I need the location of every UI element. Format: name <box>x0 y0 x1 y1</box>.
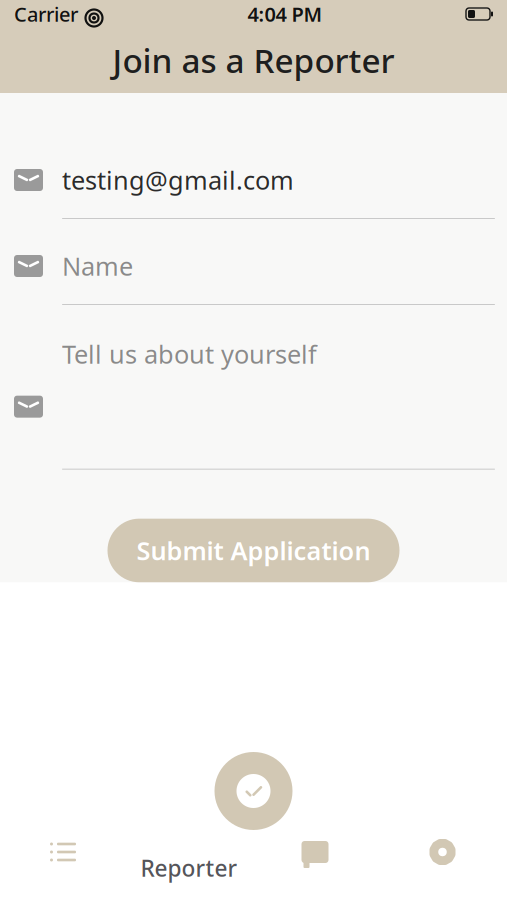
button[interactable]: Settings <box>378 823 507 881</box>
button[interactable]: Reporter <box>208 746 298 836</box>
button[interactable]: Feed <box>0 823 126 881</box>
staticText: testing@gmail.com <box>62 163 294 197</box>
staticText: Carrier <box>14 1 78 27</box>
staticText: Submit Application <box>136 534 370 567</box>
staticText: 4:04 PM <box>247 1 322 27</box>
button[interactable]: Submit Application <box>107 519 399 582</box>
staticText: Reporter <box>140 853 237 883</box>
staticText: Join as a Reporter <box>112 38 394 82</box>
staticText: Tell us about yourself <box>62 337 317 371</box>
staticText: Name <box>62 249 133 283</box>
button[interactable]: Messages <box>252 823 378 881</box>
